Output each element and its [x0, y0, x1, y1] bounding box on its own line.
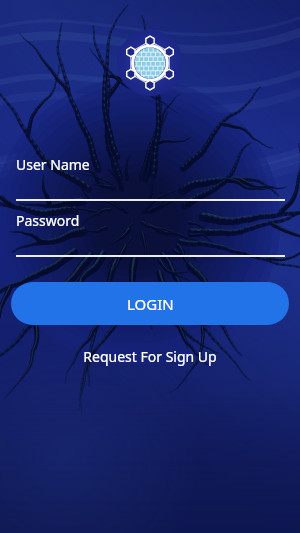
button[interactable]: Request For Sign Up: [0, 341, 300, 371]
button[interactable]: Password: [0, 211, 300, 257]
other: App logo: [117, 30, 183, 96]
staticText: LOGIN: [127, 294, 174, 314]
staticText: User Name: [16, 155, 90, 174]
button[interactable]: LOGIN: [11, 282, 289, 325]
button[interactable]: User Name: [0, 155, 300, 201]
staticText: Password: [16, 211, 80, 230]
staticText: Request For Sign Up: [83, 347, 217, 366]
